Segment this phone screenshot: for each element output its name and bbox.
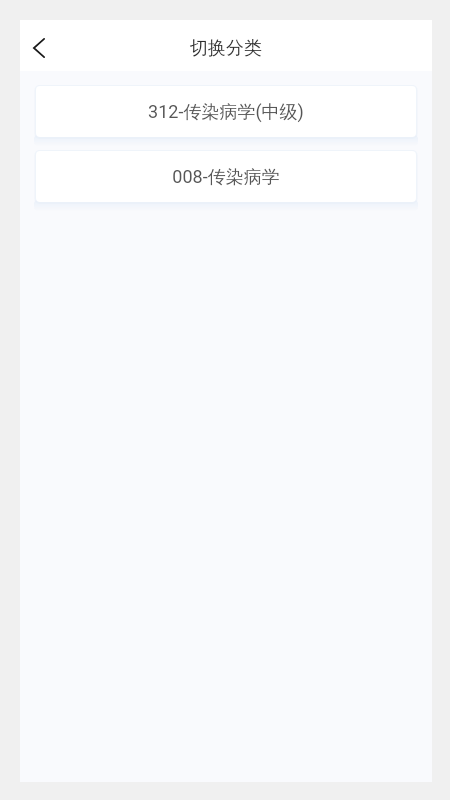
- staticText: 008-传染病学: [172, 166, 280, 189]
- button[interactable]: Back: [20, 20, 57, 71]
- staticText: 312-传染病学(中级): [148, 101, 304, 124]
- button[interactable]: 008-传染病学: [36, 151, 416, 202]
- staticText: 切换分类: [190, 37, 262, 60]
- button[interactable]: 312-传染病学(中级): [36, 86, 416, 137]
